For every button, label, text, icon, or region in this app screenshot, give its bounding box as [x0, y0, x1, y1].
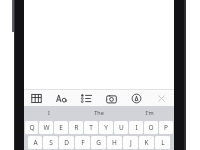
- staticText: W: [43, 123, 50, 132]
- button[interactable]: A: [28, 136, 42, 149]
- staticText: D: [64, 138, 69, 147]
- staticText: O: [148, 123, 154, 132]
- button[interactable]: P: [159, 121, 173, 134]
- staticText: L: [161, 138, 165, 147]
- staticText: F: [81, 138, 85, 147]
- button[interactable]: I: [24, 106, 74, 119]
- button[interactable]: I: [129, 121, 143, 134]
- button[interactable]: T: [84, 121, 98, 134]
- button[interactable]: Bulleted list: [74, 90, 99, 106]
- staticText: S: [49, 138, 53, 147]
- button[interactable]: G: [91, 136, 106, 149]
- button[interactable]: Draw: [124, 90, 149, 106]
- button[interactable]: J: [123, 136, 138, 149]
- button[interactable]: The: [74, 106, 124, 119]
- button[interactable]: E: [54, 121, 68, 134]
- staticText: Q: [29, 123, 35, 132]
- staticText: U: [119, 123, 124, 132]
- button[interactable]: W: [39, 121, 53, 134]
- button[interactable]: Close: [149, 90, 174, 106]
- staticText: I: [135, 123, 138, 132]
- button[interactable]: S: [43, 136, 58, 149]
- button[interactable]: L: [155, 136, 170, 149]
- staticText: I: [48, 109, 50, 116]
- staticText: E: [59, 123, 63, 132]
- staticText: K: [144, 138, 149, 147]
- button[interactable]: I'm: [124, 106, 174, 119]
- button[interactable]: Q: [25, 121, 38, 134]
- staticText: H: [112, 138, 117, 147]
- button[interactable]: R: [69, 121, 83, 134]
- button[interactable]: F: [75, 136, 90, 149]
- button[interactable]: H: [107, 136, 122, 149]
- staticText: T: [89, 123, 93, 132]
- staticText: A: [33, 138, 38, 147]
- button[interactable]: Y: [99, 121, 113, 134]
- staticText: R: [74, 123, 79, 132]
- staticText: P: [164, 123, 168, 132]
- button[interactable]: Text format: [49, 90, 74, 106]
- button[interactable]: Insert table: [24, 90, 49, 106]
- staticText: G: [96, 138, 101, 147]
- staticText: Y: [104, 123, 108, 132]
- staticText: J: [130, 138, 132, 147]
- button[interactable]: Camera: [99, 90, 124, 106]
- staticText: The: [94, 109, 104, 116]
- button[interactable]: D: [59, 136, 74, 149]
- button[interactable]: U: [114, 121, 128, 134]
- button[interactable]: O: [144, 121, 158, 134]
- button[interactable]: K: [139, 136, 154, 149]
- staticText: I'm: [145, 109, 154, 116]
